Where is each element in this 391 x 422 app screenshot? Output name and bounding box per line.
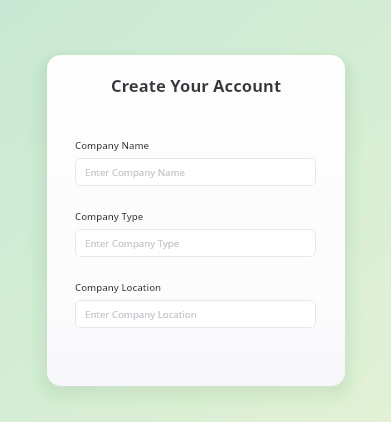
staticText: Enter Company Type <box>85 237 180 250</box>
button[interactable]: Company Location <box>75 300 316 328</box>
staticText: Create Your Account <box>111 74 282 96</box>
staticText: Company Type <box>75 210 144 223</box>
staticText: Enter Company Location <box>85 308 197 321</box>
staticText: Enter Company Name <box>85 166 185 179</box>
button[interactable]: Company Type <box>75 229 316 257</box>
button[interactable]: Company Name <box>75 158 316 186</box>
staticText: Company Name <box>75 139 150 152</box>
staticText: Company Location <box>75 281 162 294</box>
